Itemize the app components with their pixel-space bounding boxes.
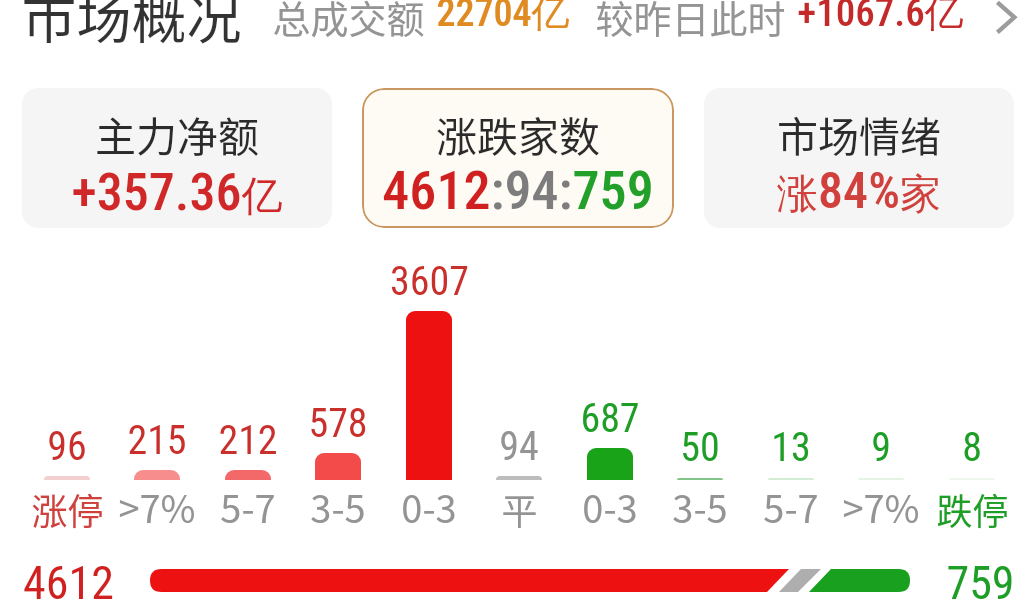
staticText: 22704亿 — [436, 0, 570, 37]
staticText: 5-7 — [220, 479, 276, 534]
staticText: 5-7 — [763, 479, 819, 534]
staticText: 3-5 — [672, 479, 728, 534]
staticText: +1067.6亿 — [797, 0, 964, 37]
staticText: +357.36亿 — [71, 162, 283, 223]
staticText: 涨84%家 — [777, 162, 941, 221]
staticText: 涨停 — [31, 483, 104, 535]
staticText: 市场概况 — [21, 0, 242, 49]
staticText: 578 — [308, 400, 368, 447]
staticText: >7% — [118, 479, 196, 534]
staticText: 总成交额 — [272, 0, 425, 44]
staticText: 9 — [871, 424, 891, 471]
staticText: 主力净额 — [95, 104, 259, 163]
staticText: 较昨日此时 — [595, 0, 786, 44]
staticText: 96 — [47, 423, 87, 470]
staticText: 50 — [680, 424, 720, 471]
staticText: 平 — [501, 483, 538, 535]
staticText: 212 — [218, 417, 278, 464]
staticText: 4612 — [23, 556, 114, 600]
staticText: 759 — [946, 556, 1015, 600]
staticText: 3-5 — [310, 479, 366, 534]
button[interactable]: More market overview — [991, 1, 1023, 33]
button[interactable] — [704, 88, 1014, 228]
staticText: 跌停 — [936, 483, 1009, 535]
staticText: 215 — [127, 417, 187, 464]
staticText: >7% — [842, 479, 920, 534]
staticText: 3607 — [390, 258, 469, 305]
staticText: 13 — [771, 424, 811, 471]
staticText: 8 — [962, 424, 982, 471]
staticText: 涨跌家数 — [436, 104, 600, 163]
button[interactable] — [362, 88, 674, 228]
button[interactable]: 市场概况 — [0, 0, 1036, 75]
staticText: 市场情绪 — [777, 104, 941, 163]
button[interactable] — [22, 88, 332, 228]
staticText: 0-3 — [401, 479, 457, 534]
staticText: 0-3 — [582, 479, 638, 534]
staticText: 94 — [499, 423, 539, 470]
staticText: 4612:94:759 — [382, 159, 654, 222]
staticText: 687 — [580, 395, 640, 442]
